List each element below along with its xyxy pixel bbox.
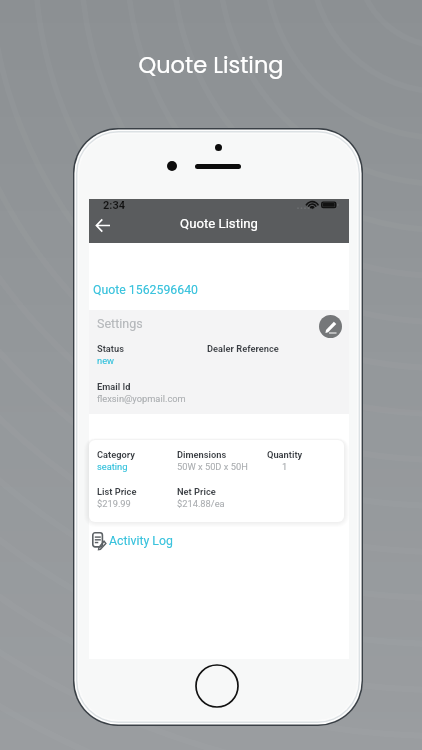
staticText: $214.88/ea	[177, 498, 225, 509]
staticText: seating	[97, 461, 128, 472]
button[interactable]: Back	[89, 212, 117, 238]
staticText: flexsin@yopmail.com	[97, 393, 186, 404]
staticText: Quote Listing	[89, 216, 349, 231]
staticText: 1	[282, 461, 288, 472]
staticText: Settings	[97, 316, 143, 331]
button[interactable]: Category	[89, 440, 344, 522]
staticText: 50W x 50D x 50H	[177, 461, 248, 472]
button[interactable]: Edit	[319, 315, 342, 338]
staticText: new	[97, 355, 115, 366]
staticText: Net Price	[177, 486, 216, 497]
staticText: Category	[97, 449, 135, 460]
staticText: Quantity	[267, 449, 303, 460]
button[interactable]: Activity Log	[90, 530, 175, 551]
staticText: Quote Listing	[0, 49, 422, 80]
staticText: $219.99	[97, 498, 131, 509]
staticText: Status	[97, 343, 124, 354]
staticText: Dealer Reference	[207, 343, 279, 354]
staticText: Dimensions	[177, 449, 227, 460]
staticText: Activity Log	[109, 534, 173, 548]
staticText: Email Id	[97, 381, 131, 392]
staticText: List Price	[97, 486, 137, 497]
button[interactable]: Quote 1562596640	[93, 283, 198, 297]
staticText: 2:34	[103, 199, 126, 212]
